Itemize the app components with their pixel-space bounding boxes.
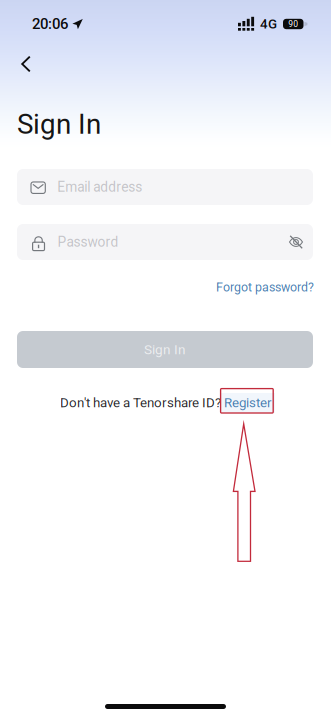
staticText: Forgot password? <box>216 280 314 294</box>
button[interactable]: Register <box>221 393 275 413</box>
staticText: Sign In <box>144 341 186 357</box>
staticText: 4G <box>260 16 277 32</box>
staticText: Password <box>58 234 119 250</box>
button[interactable]: Show password <box>282 224 310 260</box>
staticText: Don't have a Tenorshare ID? <box>60 395 221 411</box>
button[interactable]: Back <box>11 49 41 79</box>
staticText: Sign In <box>17 108 101 140</box>
staticText: 90 <box>288 19 298 29</box>
staticText: Register <box>224 395 272 411</box>
staticText: Email address <box>57 179 142 195</box>
button[interactable]: Sign In <box>17 331 313 368</box>
button[interactable]: Forgot password? <box>216 280 314 294</box>
staticText: 20:06 <box>32 15 68 33</box>
